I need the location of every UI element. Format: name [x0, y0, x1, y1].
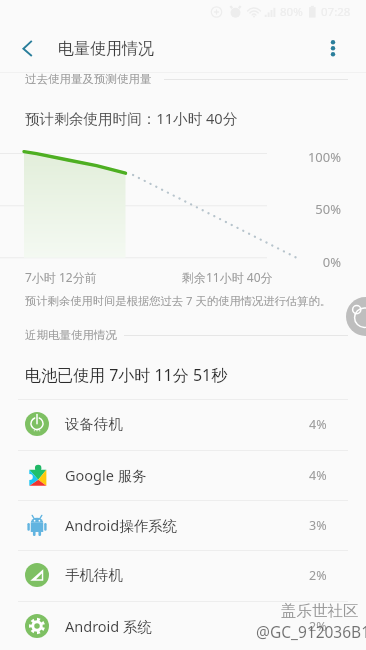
button[interactable]: Assistant: [346, 297, 366, 336]
button[interactable]: 设备待机: [0, 399, 366, 449]
staticText: Google 服务: [65, 465, 307, 485]
staticText: 3%: [309, 517, 327, 534]
staticText: 电量使用情况: [58, 39, 154, 59]
button[interactable]: Google 服务: [0, 450, 366, 500]
staticText: 4%: [309, 416, 327, 433]
button[interactable]: More options: [311, 24, 355, 68]
staticText: 剩余11小时 40分: [182, 269, 273, 285]
staticText: 0%: [322, 253, 341, 271]
staticText: 近期电量使用情况: [25, 328, 117, 342]
staticText: 2%: [309, 567, 327, 584]
staticText: Android 系统: [65, 616, 307, 636]
staticText: 预计剩余使用时间：11小时 40分: [25, 108, 238, 128]
staticText: 100%: [307, 148, 341, 166]
staticText: 电池已使用 7小时 11分 51秒: [25, 364, 228, 386]
staticText: 80%: [280, 4, 303, 20]
staticText: 设备待机: [65, 415, 307, 433]
staticText: 2%: [309, 618, 327, 635]
button[interactable]: Android 系统: [0, 601, 366, 650]
button[interactable]: 手机待机: [0, 550, 366, 600]
staticText: 预计剩余使用时间是根据您过去 7 天的使用情况进行估算的。: [25, 293, 332, 308]
staticText: 过去使用量及预测使用量: [25, 72, 152, 86]
staticText: 4%: [309, 467, 327, 484]
button[interactable]: Android操作系统: [0, 500, 366, 550]
staticText: 盖乐世社区: [281, 601, 359, 621]
staticText: 50%: [315, 200, 341, 218]
button[interactable]: Back: [4, 26, 48, 70]
staticText: 07:28: [321, 4, 351, 20]
staticText: 手机待机: [65, 566, 307, 584]
staticText: Android操作系统: [65, 515, 307, 535]
staticText: 7小时 12分前: [25, 269, 97, 285]
staticText: @GC_912036B1: [256, 621, 366, 642]
